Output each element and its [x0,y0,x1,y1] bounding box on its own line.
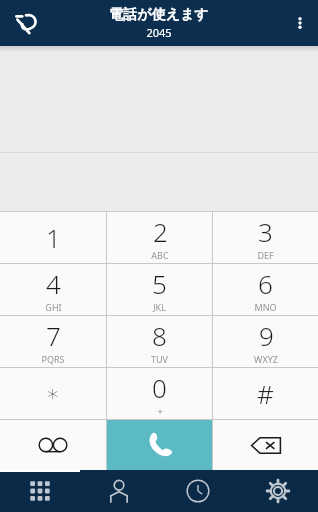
button[interactable]: More options [282,0,318,46]
staticText: 2045 [146,25,172,40]
staticText: TUV [151,353,168,365]
staticText: ∗ [46,381,60,407]
staticText: 2 [153,214,168,249]
button[interactable]: 4 [0,264,106,315]
button[interactable]: 0 [107,368,212,419]
staticText: MNO [254,301,277,313]
staticText: 8 [152,318,167,353]
button[interactable]: Contacts [79,470,158,512]
staticText: PQRS [41,353,65,365]
staticText: 3 [258,214,273,249]
button[interactable]: Keypad [0,470,79,512]
button[interactable]: 7 [0,316,106,367]
button[interactable]: Settings [238,470,318,512]
button[interactable]: 9 [213,316,318,367]
staticText: GHI [45,301,62,313]
button[interactable]: Call [107,420,212,470]
staticText: WXYZ [254,353,278,365]
staticText: 4 [46,266,61,301]
button[interactable]: App logo [8,4,46,42]
staticText: # [257,376,274,411]
button[interactable]: 2 [107,212,212,263]
staticText: 6 [258,266,273,301]
button[interactable]: # [213,368,318,419]
staticText: DEF [257,249,274,261]
staticText: 5 [152,266,167,301]
button[interactable]: 5 [107,264,212,315]
button[interactable]: Recents [158,470,238,512]
button[interactable]: 3 [213,212,318,263]
staticText: 9 [259,318,274,353]
staticText: 7 [46,318,61,353]
staticText: 1 [46,220,61,255]
staticText: + [157,405,163,417]
button[interactable]: Voicemail [0,420,106,470]
button[interactable]: 8 [107,316,212,367]
staticText: JKL [153,301,166,313]
button[interactable]: Delete [213,420,318,470]
staticText: 0 [152,370,167,405]
staticText: 電話が使えます [109,6,209,24]
button[interactable]: 1 [0,212,106,263]
button[interactable]: ∗ [0,368,106,419]
staticText: ABC [151,249,169,261]
button[interactable]: 6 [213,264,318,315]
